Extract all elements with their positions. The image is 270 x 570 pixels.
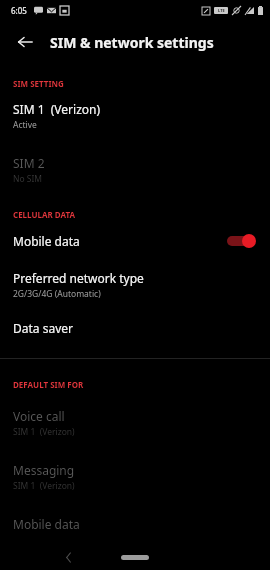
staticText: SIM 2 [13,155,45,171]
staticText: SIM & network settings [50,33,214,52]
staticText: No SIM [13,173,43,185]
button[interactable]: Preferred network type [0,262,270,308]
staticText: Preferred network type [13,270,144,286]
staticText: 6:05 [11,5,27,16]
button[interactable]: Back [8,25,42,59]
staticText: Voice call [13,408,65,424]
button[interactable]: SIM 1 (Verizon) [0,93,270,139]
staticText: SIM 1 (Verizon) [13,101,101,117]
staticText: LTE [218,8,225,13]
staticText: CELLULAR DATA [13,209,76,220]
staticText: Data saver [13,320,73,336]
button[interactable]: SIM 2 [0,147,270,193]
staticText: Active [13,119,37,131]
staticText: Mobile data [13,233,227,249]
staticText: 2G/3G/4G (Automatic) [13,288,101,300]
button[interactable]: Mobile data [0,224,270,258]
button[interactable]: Home [121,555,149,560]
staticText: SIM 1 (Verizon) [13,480,75,492]
button[interactable]: Voice call [0,400,270,446]
staticText: Mobile data [13,516,80,532]
staticText: Messaging [13,462,75,478]
button[interactable]: Back [57,546,79,568]
staticText: SIM 1 (Verizon) [13,426,75,438]
staticText: DEFAULT SIM FOR [13,379,84,390]
button[interactable]: Mobile data [0,508,270,540]
button[interactable]: Data saver [0,312,270,344]
button[interactable]: Messaging [0,454,270,500]
staticText: SIM SETTING [13,78,64,89]
